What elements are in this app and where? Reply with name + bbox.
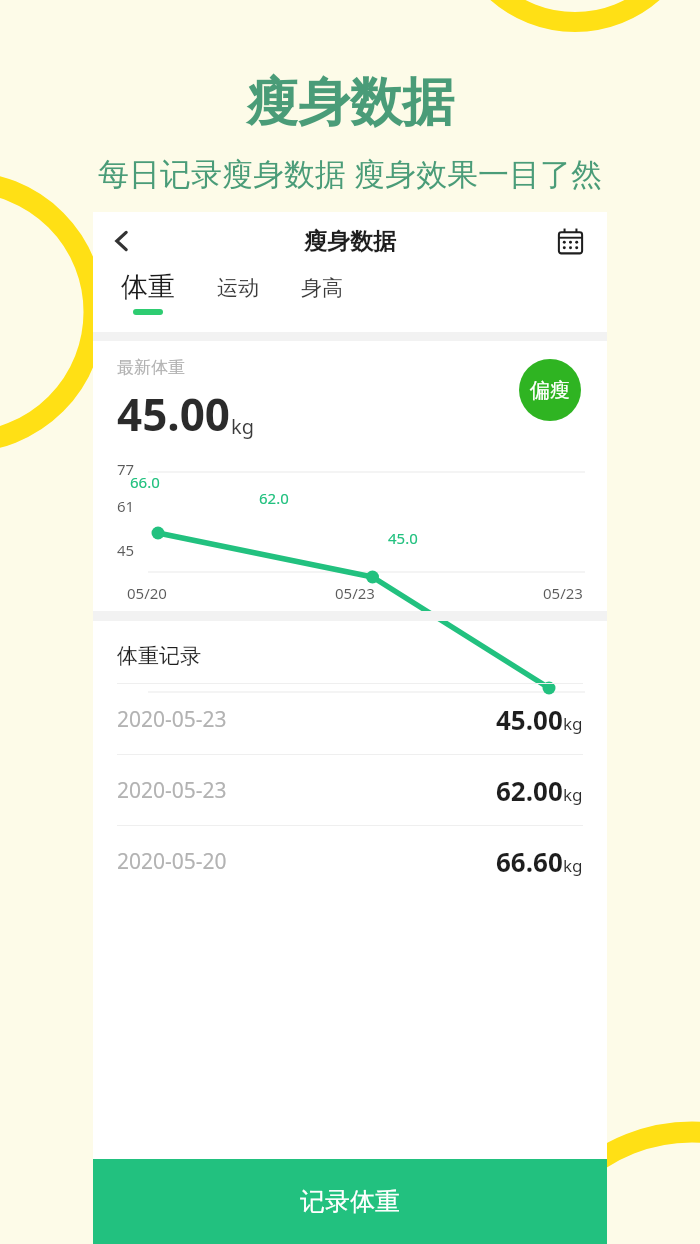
staticText: 62.00 (496, 773, 563, 808)
button[interactable]: 运动 (217, 275, 259, 301)
staticText: 62.0 (259, 488, 289, 508)
staticText: 45 (117, 540, 135, 560)
button[interactable]: Back (99, 218, 145, 264)
button[interactable]: 体重 (121, 270, 175, 315)
staticText: 瘦身数据 (0, 70, 700, 136)
staticText: 2020-05-20 (117, 847, 227, 876)
staticText: 运动 (217, 275, 259, 301)
button[interactable]: 2020-05-23 (93, 755, 607, 825)
staticText: 05/23 (543, 583, 583, 603)
button[interactable]: 偏瘦 (519, 359, 581, 421)
staticText: 每日记录瘦身数据 瘦身效果一目了然 (0, 152, 700, 194)
staticText: kg (231, 413, 254, 440)
button[interactable]: 2020-05-23 (93, 684, 607, 754)
staticText: 66.0 (130, 472, 160, 492)
staticText: 最新体重 (117, 357, 185, 378)
staticText: 体重记录 (117, 643, 201, 669)
staticText: 61 (117, 496, 135, 516)
staticText: kg (563, 712, 583, 735)
staticText: 77 (117, 459, 135, 479)
button[interactable]: 记录体重 (93, 1159, 607, 1244)
staticText: 偏瘦 (530, 378, 570, 403)
staticText: 05/20 (127, 583, 167, 603)
staticText: 2020-05-23 (117, 705, 227, 734)
staticText: 45.00 (496, 702, 563, 737)
staticText: 记录体重 (300, 1186, 400, 1217)
staticText: 2020-05-23 (117, 776, 227, 805)
staticText: 45.0 (388, 528, 418, 548)
staticText: kg (563, 854, 583, 877)
button[interactable]: 身高 (301, 275, 343, 301)
button[interactable]: 2020-05-20 (93, 826, 607, 896)
staticText: 体重 (121, 270, 175, 304)
staticText: 身高 (301, 275, 343, 301)
staticText: 05/23 (335, 583, 375, 603)
staticText: kg (563, 783, 583, 806)
staticText: 45.00 (117, 384, 231, 444)
staticText: 瘦身数据 (304, 227, 396, 256)
staticText: 66.60 (496, 844, 563, 879)
button[interactable]: Calendar (547, 218, 593, 264)
